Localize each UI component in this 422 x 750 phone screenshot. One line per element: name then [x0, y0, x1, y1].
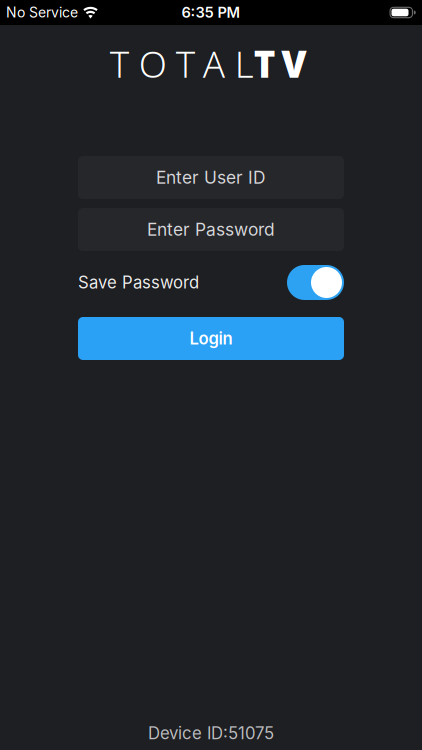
staticText: Enter User ID — [156, 167, 266, 188]
staticText: TV — [254, 38, 306, 88]
button[interactable]: Save Password — [287, 265, 344, 300]
button[interactable]: Enter User ID — [78, 156, 344, 199]
staticText: Save Password — [78, 273, 199, 292]
button[interactable]: Login — [78, 317, 344, 360]
button[interactable]: Enter Password — [78, 208, 344, 251]
staticText: Device ID:51075 — [148, 723, 274, 743]
staticText: No Service — [6, 4, 78, 21]
staticText: 6:35 PM — [181, 4, 240, 21]
staticText: TOTAL — [110, 38, 254, 88]
staticText: Enter Password — [147, 219, 275, 240]
staticText: Login — [189, 329, 232, 348]
